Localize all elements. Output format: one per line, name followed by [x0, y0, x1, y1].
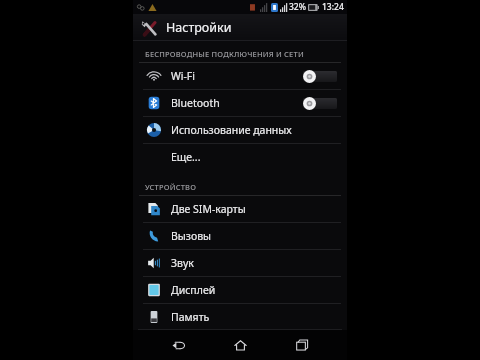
staticText: Wi-Fi [171, 69, 196, 83]
button[interactable]: Home [223, 330, 257, 360]
button[interactable]: Две SIM-карты [133, 196, 347, 222]
button[interactable]: Toggle [303, 96, 337, 110]
staticText: Память [171, 310, 210, 324]
staticText: 32% [289, 1, 306, 13]
staticText: 13:24 [322, 1, 344, 13]
staticText: Звук [171, 256, 194, 270]
button[interactable]: Еще... [133, 144, 347, 170]
staticText: Использование данных [171, 123, 292, 137]
button[interactable]: Вызовы [133, 223, 347, 249]
staticText: Дисплей [171, 283, 216, 297]
staticText: БЕСПРОВОДНЫЕ ПОДКЛЮЧЕНИЯ И СЕТИ [145, 49, 304, 59]
button[interactable]: Использование данных [133, 117, 347, 143]
button[interactable]: Toggle [303, 69, 337, 83]
staticText: Две SIM-карты [171, 202, 246, 216]
staticText: Вызовы [171, 229, 212, 243]
button[interactable]: Recents [285, 330, 319, 360]
button[interactable]: Дисплей [133, 277, 347, 303]
staticText: УСТРОЙСТВО [145, 182, 197, 192]
staticText: Еще... [171, 150, 201, 164]
button[interactable]: Wi-Fi [133, 63, 347, 89]
button[interactable]: Память [133, 304, 347, 329]
button[interactable]: Bluetooth [133, 90, 347, 116]
button[interactable]: Back [161, 330, 195, 360]
staticText: Bluetooth [171, 96, 220, 110]
button[interactable]: Звук [133, 250, 347, 276]
staticText: Настройки [166, 19, 232, 36]
